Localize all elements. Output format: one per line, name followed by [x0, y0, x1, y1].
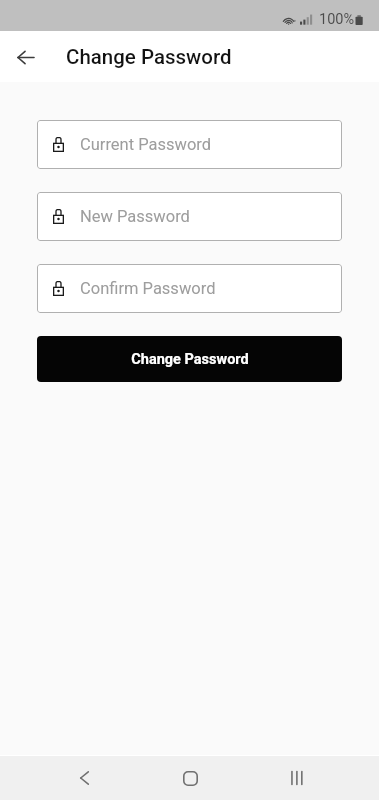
- button[interactable]: New Password: [37, 192, 342, 241]
- button[interactable]: Home: [137, 756, 243, 800]
- staticText: Change Password: [66, 45, 232, 69]
- staticText: 100%: [319, 11, 355, 28]
- button[interactable]: Confirm Password: [37, 264, 342, 313]
- staticText: Confirm Password: [80, 279, 216, 298]
- staticText: Change Password: [131, 351, 249, 368]
- button[interactable]: System back: [32, 756, 137, 800]
- button[interactable]: Current Password: [37, 120, 342, 169]
- staticText: New Password: [80, 207, 190, 226]
- button[interactable]: Back: [8, 39, 44, 75]
- staticText: Current Password: [80, 135, 212, 154]
- button[interactable]: Change Password: [37, 336, 342, 382]
- button[interactable]: Recent apps: [243, 756, 349, 800]
